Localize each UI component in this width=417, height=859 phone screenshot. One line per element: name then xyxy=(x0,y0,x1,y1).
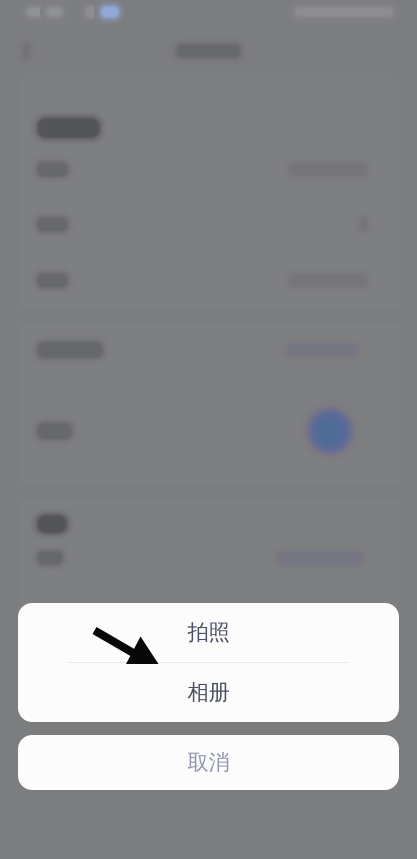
staticText: 取消 xyxy=(187,749,229,776)
button[interactable]: 相册 xyxy=(18,663,399,722)
staticText: 拍照 xyxy=(187,619,229,646)
staticText: 相册 xyxy=(187,679,229,706)
button[interactable]: 取消 xyxy=(18,735,399,790)
button[interactable]: 拍照 xyxy=(18,603,399,662)
